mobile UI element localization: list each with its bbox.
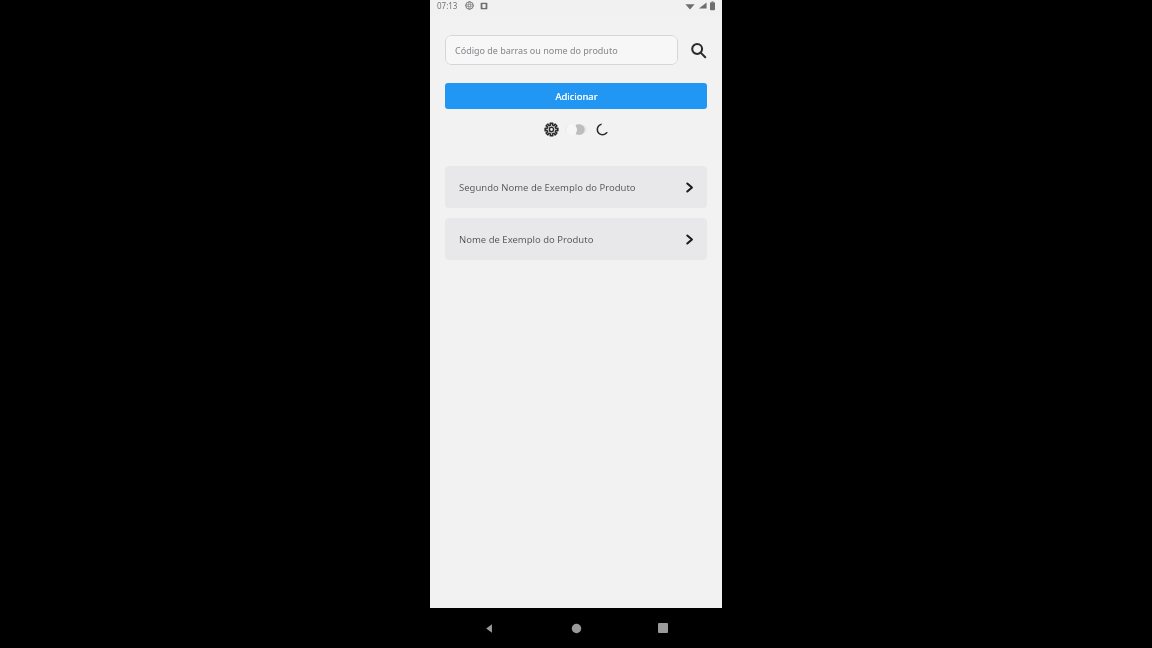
staticText: Código de barras ou nome do produto xyxy=(455,44,618,56)
staticText: Nome de Exemplo do Produto xyxy=(459,233,684,246)
button[interactable]: Segundo Nome de Exemplo do Produto xyxy=(445,166,707,208)
button[interactable]: Configurações xyxy=(542,120,560,138)
button[interactable]: Recentes xyxy=(648,613,678,643)
staticText: Adicionar xyxy=(555,90,598,103)
button[interactable]: Adicionar xyxy=(445,83,707,109)
button[interactable]: Alternar tema xyxy=(565,123,587,136)
button[interactable]: Voltar xyxy=(474,613,504,643)
staticText: Segundo Nome de Exemplo do Produto xyxy=(459,181,684,194)
button[interactable]: Buscar xyxy=(686,38,710,62)
button[interactable]: Nome de Exemplo do Produto xyxy=(445,218,707,260)
button[interactable]: Código de barras ou nome do produto xyxy=(445,35,678,65)
button[interactable]: Modo escuro xyxy=(593,120,611,138)
staticText: 07:13 xyxy=(437,0,458,11)
button[interactable]: Início xyxy=(561,613,591,643)
